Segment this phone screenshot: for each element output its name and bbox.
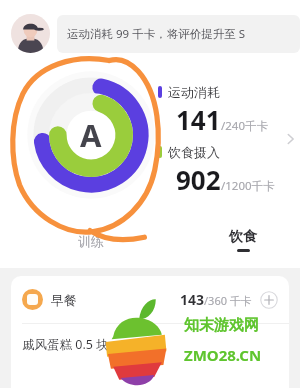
staticText: 902 [176, 162, 221, 197]
button[interactable]: 用户头像 [11, 14, 50, 53]
button[interactable]: 早餐 [11, 276, 289, 388]
staticText: 运动消耗 [168, 84, 220, 100]
staticText: /1200千卡 [221, 178, 275, 194]
button[interactable]: 添加食物 [260, 291, 278, 309]
staticText: 143/360 千卡 [180, 290, 252, 309]
staticText: 戚风蛋糕 0.5 块 [22, 336, 109, 353]
staticText: 运动消耗 99 千卡，将评价提升至 S [67, 26, 245, 42]
button[interactable]: 训练 [54, 228, 128, 254]
staticText: 饮食摄入 [168, 144, 220, 160]
staticText: 饮食 [229, 228, 257, 246]
button[interactable]: 运动消耗 99 千卡，将评价提升至 S [57, 15, 300, 53]
button[interactable]: 查看详情 [282, 130, 300, 148]
staticText: 早餐 [51, 292, 77, 308]
staticText: 知末游戏网 [184, 316, 259, 335]
staticText: /240千卡 [221, 118, 269, 134]
staticText: A [80, 114, 102, 156]
staticText: 训练 [78, 233, 104, 249]
button[interactable]: 饮食 [206, 228, 280, 252]
staticText: 141 [176, 102, 221, 137]
staticText: ZMO28.CN [184, 345, 262, 365]
button[interactable]: A [26, 70, 156, 200]
button[interactable]: 运动消耗 [158, 84, 300, 197]
